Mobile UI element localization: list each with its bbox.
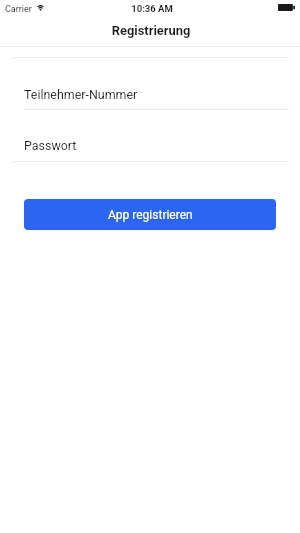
- button[interactable]: App registrieren: [24, 199, 276, 230]
- staticText: Carrier: [5, 4, 32, 15]
- staticText: Passwort: [24, 138, 77, 153]
- other: Battery full: [278, 4, 295, 11]
- staticText: Registrierung: [1, 23, 300, 38]
- other: Wi-Fi: [36, 4, 45, 10]
- button[interactable]: Teilnehmer-Nummer: [0, 57, 300, 109]
- staticText: 10:36 AM: [2, 3, 300, 14]
- staticText: App registrieren: [108, 208, 193, 222]
- button[interactable]: Passwort: [0, 109, 300, 161]
- staticText: Teilnehmer-Nummer: [24, 87, 138, 102]
